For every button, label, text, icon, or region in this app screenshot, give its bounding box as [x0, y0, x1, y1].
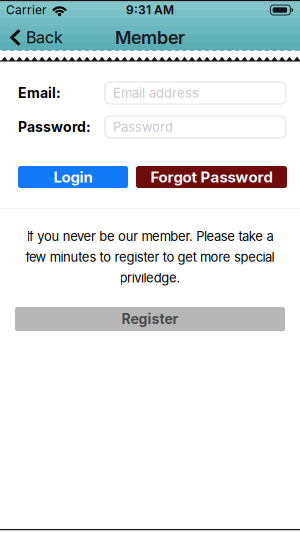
staticText: few minutes to register to get more spec… [25, 249, 275, 265]
staticText: Password: [18, 119, 91, 135]
staticText: Register [121, 311, 178, 327]
staticText: Login [53, 168, 92, 186]
button[interactable]: Email address [105, 82, 286, 104]
staticText: priviledge. [119, 270, 180, 285]
staticText: Back [26, 28, 63, 47]
staticText: Email address [113, 85, 199, 101]
button[interactable]: Register [15, 307, 285, 331]
button[interactable]: Login [18, 166, 128, 188]
staticText: Email: [18, 85, 61, 101]
staticText: Carrier [6, 3, 47, 17]
staticText: Password [113, 119, 173, 135]
button[interactable]: Password [105, 116, 286, 138]
button[interactable]: Forgot Password [136, 166, 287, 188]
button[interactable]: Back [9, 28, 63, 47]
staticText: 9:31 AM [126, 3, 174, 17]
staticText: Forgot Password [150, 168, 272, 186]
staticText: If you never be our member. Please take … [26, 228, 273, 244]
staticText: Member [115, 27, 185, 48]
